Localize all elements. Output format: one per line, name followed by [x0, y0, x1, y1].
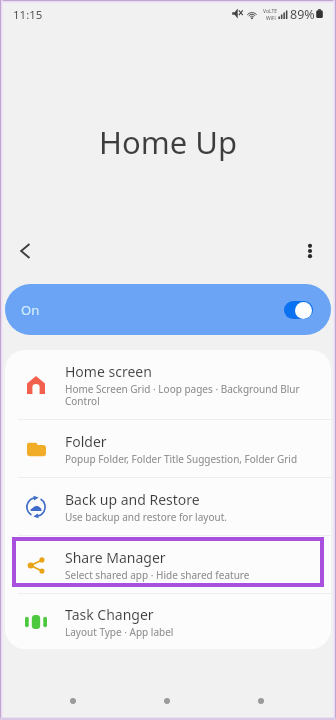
staticText: Task Changer [65, 605, 154, 624]
staticText: Home Screen Grid · Loop pages · Backgrou… [65, 382, 321, 408]
button[interactable]: Back [237, 677, 285, 720]
button[interactable]: More options [286, 227, 334, 275]
button[interactable]: Task Changer [5, 594, 331, 649]
button[interactable]: Home screen [5, 350, 331, 419]
staticText: 89% [290, 6, 315, 23]
staticText: Popup Folder, Folder Title Suggestion, F… [65, 452, 298, 466]
staticText: Share Manager [65, 548, 166, 567]
staticText: Select shared app · Hide shared feature [65, 568, 250, 582]
button[interactable]: Back up and Restore [5, 478, 331, 535]
staticText: VoLTE [263, 8, 278, 15]
staticText: On [21, 301, 40, 319]
staticText: WiFi [266, 15, 276, 22]
staticText: Folder [65, 432, 107, 451]
button[interactable]: Recents [49, 677, 97, 720]
staticText: Layout Type · App label [65, 625, 174, 639]
button[interactable]: Folder [5, 420, 331, 477]
button[interactable]: Home [143, 677, 191, 720]
staticText: Use backup and restore for layout. [65, 510, 227, 524]
staticText: Back up and Restore [65, 490, 200, 509]
button[interactable]: Navigate up [1, 227, 49, 275]
button[interactable]: On [5, 284, 331, 335]
button[interactable]: Share Manager [5, 536, 331, 593]
staticText: Home screen [65, 362, 152, 381]
staticText: 11:15 [13, 7, 43, 23]
staticText: Home Up [99, 121, 237, 163]
